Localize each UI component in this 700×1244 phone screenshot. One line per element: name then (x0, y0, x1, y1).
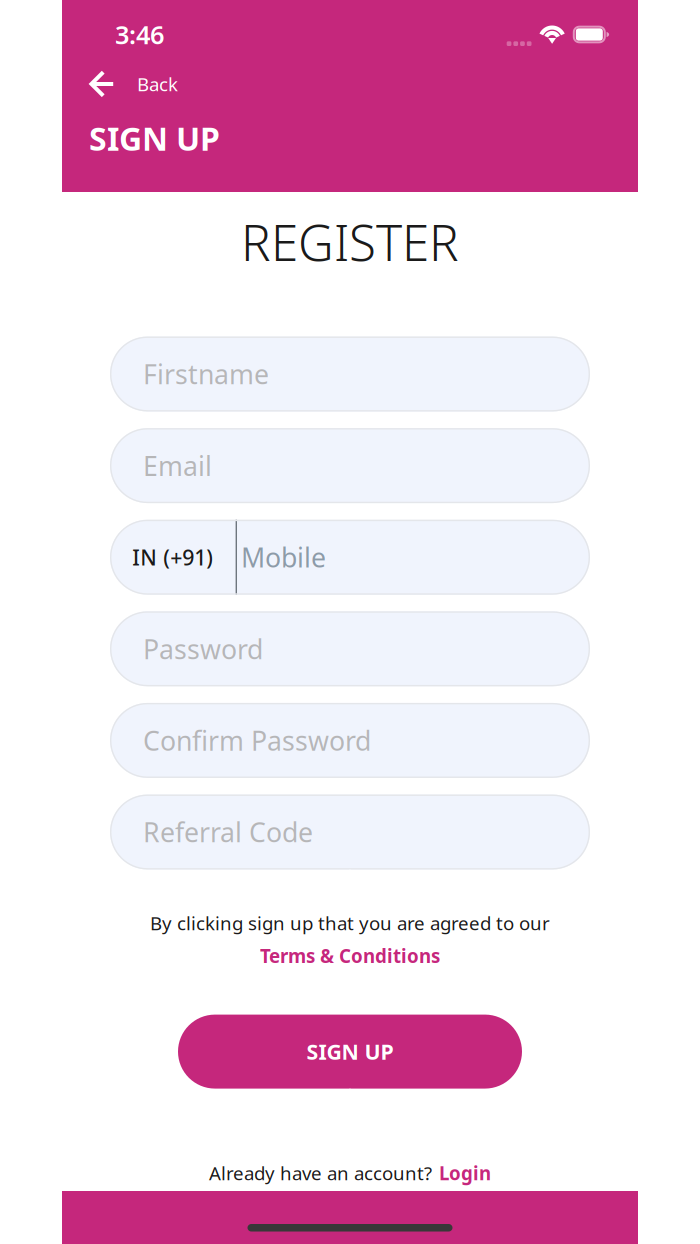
staticText: Firstname (143, 356, 269, 392)
staticText: By clicking sign up that you are agreed … (150, 910, 550, 935)
button[interactable]: Confirm Password (110, 703, 590, 778)
button[interactable]: Terms & Conditions (254, 935, 446, 968)
staticText: Terms & Conditions (260, 943, 440, 968)
button[interactable]: Password (110, 611, 590, 686)
staticText: Already have an account? (209, 1161, 432, 1185)
button[interactable]: Login (432, 1161, 491, 1185)
button[interactable]: IN (+91) (110, 520, 590, 595)
staticText: Confirm Password (143, 723, 371, 758)
staticText: Referral Code (143, 814, 313, 850)
button[interactable]: Email (110, 428, 590, 503)
button[interactable]: Referral Code (110, 794, 590, 869)
staticText: Back (137, 72, 178, 96)
staticText: Email (143, 448, 212, 483)
button[interactable]: Firstname (110, 336, 590, 411)
staticText: SIGN UP (306, 1037, 393, 1066)
staticText: Password (143, 631, 263, 666)
staticText: Mobile (241, 539, 326, 575)
staticText: SIGN UP (89, 117, 220, 159)
staticText: IN (+91) (132, 543, 213, 571)
staticText: REGISTER (241, 209, 459, 274)
button[interactable]: Back (62, 66, 268, 102)
staticText: 3:46 (115, 18, 164, 51)
staticText: Login (439, 1161, 491, 1185)
button[interactable]: SIGN UP (178, 1015, 522, 1089)
